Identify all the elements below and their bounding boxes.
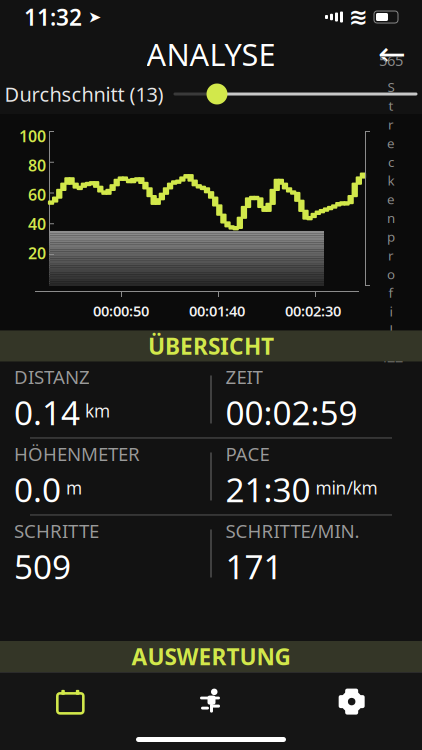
- button[interactable]: Calendar: [0, 679, 141, 725]
- staticText: 422: [379, 347, 403, 366]
- staticText: km: [80, 399, 110, 422]
- staticText: k: [387, 172, 394, 189]
- staticText: 100: [19, 125, 46, 147]
- staticText: 00:00:50: [93, 301, 149, 320]
- staticText: 00:01:40: [189, 301, 245, 320]
- staticText: f: [388, 284, 393, 301]
- button[interactable]: Averaging window: [173, 81, 417, 107]
- staticText: i: [389, 302, 392, 320]
- staticText: e: [387, 190, 395, 208]
- staticText: r: [388, 115, 394, 133]
- staticText: ←: [378, 35, 406, 73]
- staticText: 11:32: [24, 2, 82, 32]
- staticText: r: [388, 246, 394, 264]
- staticText: 21:30: [225, 467, 310, 511]
- button[interactable]: Back: [370, 34, 414, 74]
- staticText: PACE: [225, 441, 269, 466]
- staticText: 00:02:30: [285, 301, 341, 320]
- button[interactable]: Activity: [141, 679, 281, 725]
- staticText: e: [387, 134, 395, 152]
- staticText: ≋: [349, 4, 368, 30]
- staticText: 00:02:59: [225, 390, 357, 434]
- staticText: S: [387, 78, 394, 96]
- staticText: ZEIT: [225, 364, 262, 389]
- staticText: SCHRITTE: [14, 518, 99, 543]
- staticText: 60: [28, 184, 46, 205]
- staticText: HÖHENMETER: [14, 441, 140, 466]
- staticText: o: [387, 265, 395, 283]
- staticText: 0.14: [14, 390, 80, 434]
- staticText: Durchschnitt (13): [4, 81, 163, 107]
- staticText: 80: [28, 155, 46, 176]
- staticText: 20: [28, 242, 46, 264]
- staticText: DISTANZ: [14, 364, 90, 389]
- staticText: 565: [379, 51, 403, 70]
- staticText: n: [387, 209, 395, 227]
- staticText: 509: [14, 544, 71, 588]
- staticText: ➤: [82, 8, 101, 26]
- staticText: SCHRITTE/MIN.: [225, 518, 359, 543]
- staticText: ÜBERSICHT: [148, 331, 274, 361]
- staticText: l: [389, 321, 392, 339]
- staticText: m: [61, 476, 82, 499]
- staticText: t: [388, 97, 393, 114]
- staticText: p: [387, 228, 395, 245]
- staticText: 0.0: [14, 467, 61, 511]
- staticText: AUSWERTUNG: [131, 641, 290, 671]
- button[interactable]: Settings: [281, 679, 422, 725]
- staticText: 171: [225, 544, 282, 588]
- staticText: 40: [28, 213, 46, 234]
- staticText: c: [388, 153, 394, 171]
- staticText: min/km: [310, 476, 377, 499]
- staticText: ANALYSE: [146, 34, 275, 74]
